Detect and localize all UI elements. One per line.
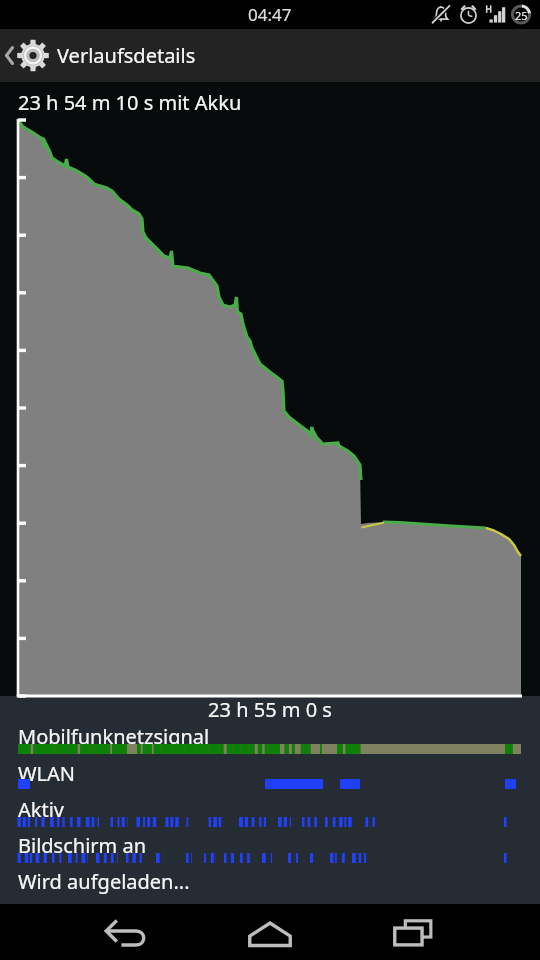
button[interactable]: Recent apps — [361, 904, 469, 960]
staticText: Verlaufsdetails — [57, 42, 196, 69]
button[interactable]: Navigate up to Settings — [0, 29, 52, 82]
button[interactable]: Home — [216, 904, 324, 960]
staticText: Mobilfunknetzsignal — [18, 723, 210, 750]
staticText: Wird aufgeladen... — [18, 868, 190, 895]
staticText: 23 h 54 m 10 s mit Akku — [18, 89, 242, 116]
button[interactable]: Back — [72, 904, 180, 960]
staticText: 25 — [515, 8, 528, 23]
staticText: 04:47 — [248, 3, 292, 26]
staticText: Aktiv — [18, 796, 64, 823]
staticText: 23 h 55 m 0 s — [0, 696, 540, 723]
staticText: WLAN — [18, 760, 76, 787]
staticText: Bildschirm an — [18, 832, 147, 859]
